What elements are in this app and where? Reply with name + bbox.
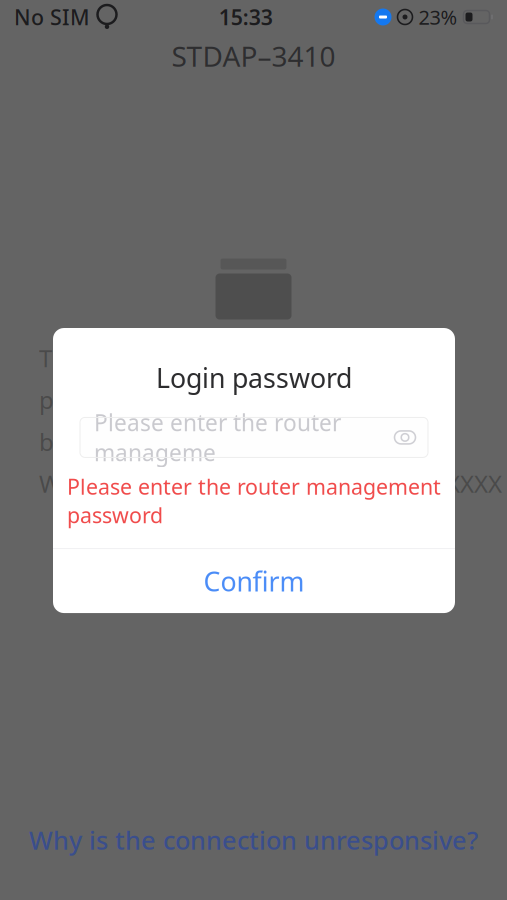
staticText: Why is the connection unresponsive?: [29, 823, 478, 857]
staticText: password is on the label at the: [39, 384, 382, 416]
staticText: Please enter the router manageme: [94, 407, 341, 467]
staticText: Please enter the router management passw…: [67, 472, 441, 529]
staticText: 23%: [418, 4, 457, 30]
staticText: The default router management: [39, 342, 403, 374]
button[interactable]: Confirm: [53, 549, 455, 613]
button[interactable]: Show password: [390, 422, 420, 452]
staticText: No SIM: [14, 3, 90, 31]
staticText: Confirm: [203, 563, 304, 599]
staticText: Login password: [156, 360, 352, 395]
staticText: bottom of the device: [39, 426, 275, 458]
button[interactable]: Why is the connection unresponsive?: [0, 820, 507, 860]
staticText: STDAP–3410: [171, 37, 335, 75]
staticText: WLAN name Beginning with STDAP–XXXX: [39, 468, 502, 499]
staticText: 15:33: [219, 3, 273, 31]
